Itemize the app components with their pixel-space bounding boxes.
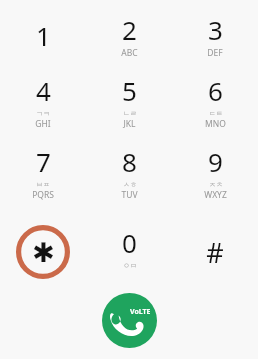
staticText: TUV <box>121 189 138 201</box>
staticText: 4 <box>36 73 51 108</box>
staticText: 3 <box>208 12 223 47</box>
button[interactable]: Dial 3 <box>172 0 258 71</box>
button[interactable]: Dial 6 <box>172 71 258 142</box>
button[interactable]: Dial ✱ <box>0 213 86 291</box>
staticText: 6 <box>208 73 223 108</box>
staticText: ㅈㅊ <box>209 180 223 189</box>
staticText: GHI <box>35 118 51 130</box>
button[interactable]: Dial 2 <box>86 0 172 71</box>
staticText: ㄱㅋ <box>36 109 50 118</box>
button[interactable]: Dial 9 <box>172 142 258 213</box>
button[interactable]: Call <box>102 293 157 348</box>
staticText: ㅅㅎ <box>123 180 137 189</box>
staticText: 1 <box>36 18 51 53</box>
staticText: JKL <box>123 118 136 130</box>
staticText: WXYZ <box>204 189 227 201</box>
button[interactable]: Dial 1 <box>0 0 86 71</box>
staticText: PQRS <box>32 189 54 201</box>
staticText: ㅇㅁ <box>123 261 137 270</box>
staticText: VoLTE <box>130 307 151 317</box>
staticText: ㅂㅍ <box>36 180 50 189</box>
button[interactable]: Dial 0 <box>86 213 172 291</box>
staticText: ㄴㄹ <box>123 109 137 118</box>
button[interactable]: Dial 8 <box>86 142 172 213</box>
button[interactable]: Dial 4 <box>0 71 86 142</box>
staticText: 2 <box>122 12 137 47</box>
button[interactable]: Dial 5 <box>86 71 172 142</box>
staticText: # <box>206 234 224 271</box>
staticText: DEF <box>207 47 223 59</box>
staticText: ABC <box>121 47 138 59</box>
staticText: MNO <box>205 118 226 130</box>
staticText: 0 <box>122 225 137 260</box>
staticText: 9 <box>208 144 223 179</box>
button[interactable]: Dial 7 <box>0 142 86 213</box>
staticText: 8 <box>122 144 137 179</box>
staticText: ㄷㅌ <box>209 109 223 118</box>
staticText: ✱ <box>32 237 55 268</box>
button[interactable]: Dial # <box>172 213 258 291</box>
staticText: 5 <box>122 73 137 108</box>
staticText: 7 <box>36 144 51 179</box>
